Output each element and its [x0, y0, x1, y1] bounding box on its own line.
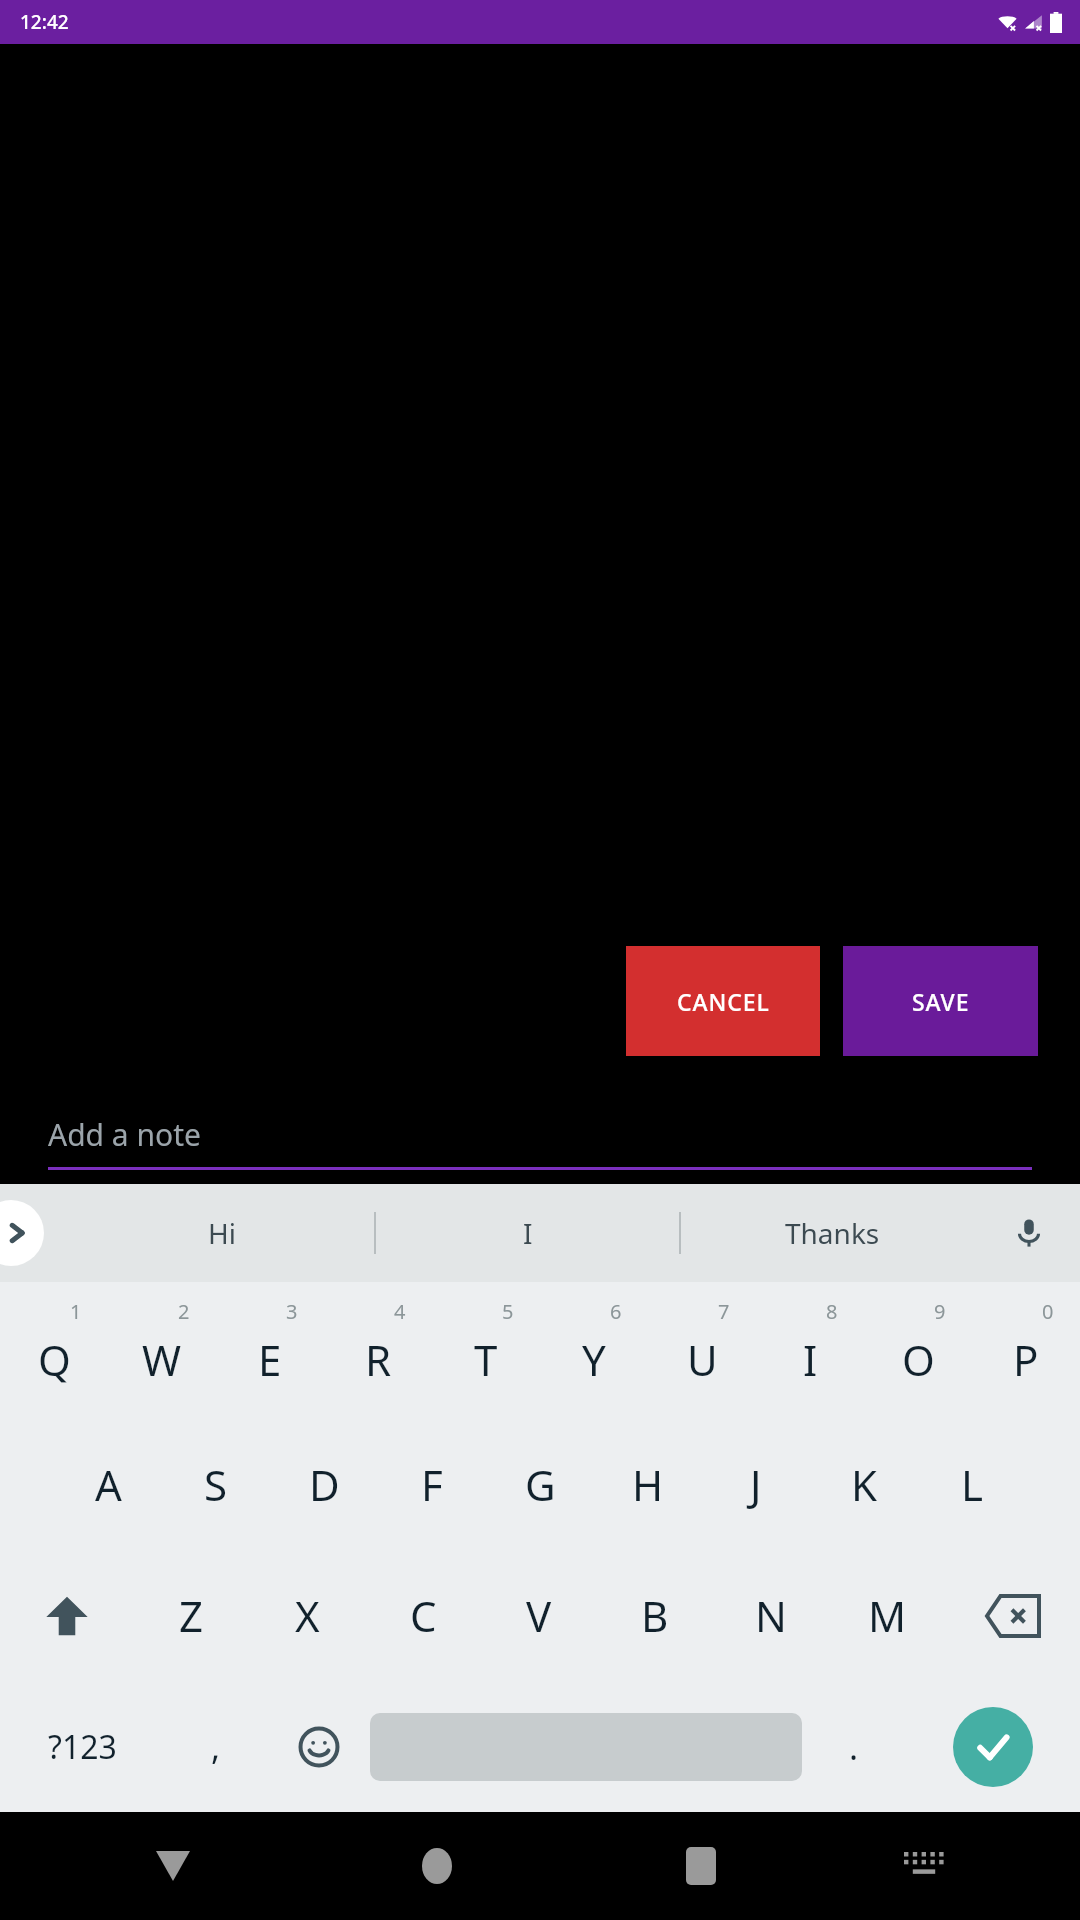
staticText: Y [582, 1331, 606, 1388]
button[interactable]: Recents [618, 1812, 783, 1920]
staticText: 1 [70, 1298, 82, 1325]
staticText: O [902, 1331, 935, 1388]
staticText: X [295, 1587, 320, 1644]
staticText: 0 [1042, 1298, 1054, 1325]
button[interactable]: Switch keyboard [841, 1812, 1006, 1920]
button[interactable]: N [713, 1550, 829, 1681]
button[interactable]: F [378, 1419, 486, 1550]
button[interactable]: 9 [864, 1288, 972, 1419]
button[interactable]: ?123 [0, 1681, 164, 1812]
staticText: I [523, 1214, 533, 1252]
staticText: I [803, 1331, 818, 1388]
button[interactable]: 4 [324, 1288, 432, 1419]
button[interactable]: 7 [648, 1288, 756, 1419]
button[interactable]: J [702, 1419, 810, 1550]
button[interactable]: SAVE [843, 946, 1038, 1056]
staticText: 12:42 [20, 9, 69, 35]
button[interactable]: CANCEL [626, 946, 820, 1056]
button[interactable]: K [810, 1419, 918, 1550]
button[interactable]: Thanks [681, 1184, 984, 1282]
button[interactable]: A [54, 1419, 162, 1550]
staticText: Q [38, 1331, 71, 1388]
button[interactable]: 5 [432, 1288, 540, 1419]
staticText: A [95, 1456, 122, 1513]
button[interactable]: 0 [972, 1288, 1080, 1419]
button[interactable]: Hi [70, 1184, 374, 1282]
staticText: U [687, 1331, 718, 1388]
staticText: 9 [934, 1298, 946, 1325]
button[interactable]: I [376, 1184, 679, 1282]
staticText: M [868, 1587, 907, 1644]
button[interactable]: H [594, 1419, 702, 1550]
button[interactable]: , [164, 1681, 267, 1812]
staticText: Hi [208, 1214, 236, 1252]
staticText: G [525, 1456, 556, 1513]
button[interactable]: 6 [540, 1288, 648, 1419]
button[interactable]: V [481, 1550, 597, 1681]
button[interactable]: Backspace [945, 1550, 1080, 1681]
button[interactable]: 8 [756, 1288, 864, 1419]
staticText: V [526, 1587, 552, 1644]
staticText: Add a note [48, 1114, 201, 1155]
staticText: CANCEL [677, 986, 770, 1017]
button[interactable]: Enter [905, 1681, 1080, 1812]
staticText: 2 [178, 1298, 190, 1325]
staticText: E [258, 1331, 282, 1388]
staticText: 8 [826, 1298, 838, 1325]
staticText: 4 [394, 1298, 406, 1325]
button[interactable]: C [365, 1550, 481, 1681]
staticText: Thanks [785, 1214, 880, 1252]
staticText: . [849, 1724, 859, 1770]
staticText: 3 [286, 1298, 298, 1325]
staticText: 7 [718, 1298, 730, 1325]
button[interactable]: D [270, 1419, 378, 1550]
button[interactable]: 1 [0, 1288, 108, 1419]
button[interactable]: Expand suggestions [0, 1200, 44, 1266]
button[interactable]: X [249, 1550, 365, 1681]
staticText: K [851, 1456, 877, 1513]
button[interactable]: S [162, 1419, 270, 1550]
staticText: W [142, 1331, 182, 1388]
staticText: L [961, 1456, 984, 1513]
button[interactable]: 2 [108, 1288, 216, 1419]
staticText: 6 [610, 1298, 622, 1325]
staticText: C [410, 1587, 437, 1644]
staticText: SAVE [912, 986, 970, 1017]
button[interactable]: 3 [216, 1288, 324, 1419]
button[interactable]: Shift [0, 1550, 134, 1681]
button[interactable]: Emoji [267, 1681, 370, 1812]
staticText: N [755, 1587, 787, 1644]
staticText: B [641, 1587, 669, 1644]
button[interactable]: Add a note [48, 1114, 1032, 1170]
button[interactable]: Back [90, 1812, 255, 1920]
staticText: J [750, 1456, 762, 1513]
staticText: Z [179, 1587, 204, 1644]
button[interactable]: Z [134, 1550, 249, 1681]
button[interactable]: Voice input [1000, 1204, 1058, 1262]
button[interactable]: L [918, 1419, 1026, 1550]
staticText: F [421, 1456, 443, 1513]
staticText: 5 [502, 1298, 514, 1325]
button[interactable]: M [829, 1550, 945, 1681]
staticText: R [365, 1331, 392, 1388]
button[interactable]: . [802, 1681, 905, 1812]
staticText: ?123 [48, 1725, 117, 1769]
staticText: H [632, 1456, 664, 1513]
staticText: P [1013, 1331, 1039, 1388]
staticText: , [211, 1724, 221, 1770]
button[interactable]: B [597, 1550, 713, 1681]
staticText: T [474, 1331, 498, 1388]
staticText: S [204, 1456, 228, 1513]
button[interactable]: Home [354, 1812, 519, 1920]
staticText: D [309, 1456, 340, 1513]
button[interactable]: G [486, 1419, 594, 1550]
